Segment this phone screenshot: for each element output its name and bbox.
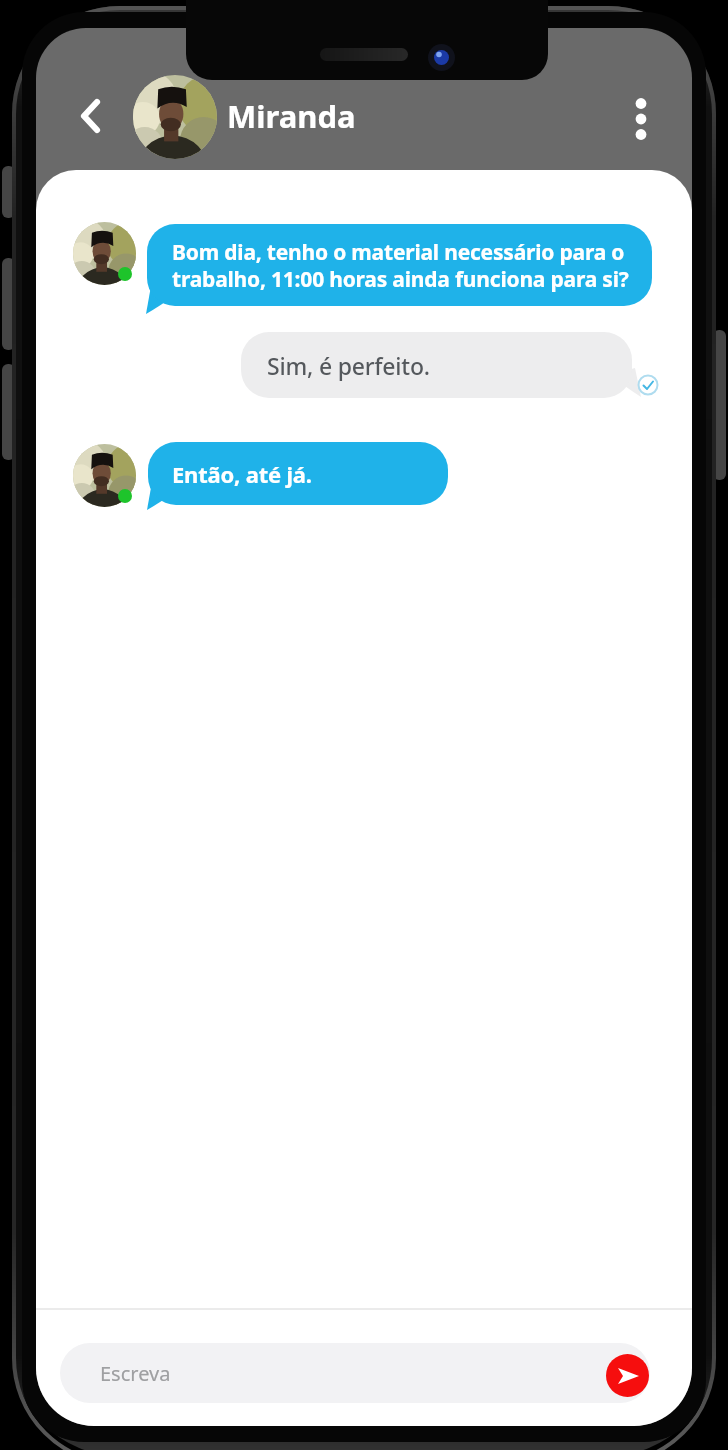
staticText: Escreva xyxy=(100,1360,171,1387)
button[interactable]: Então, até já. xyxy=(148,442,448,505)
button[interactable]: Sim, é perfeito. xyxy=(241,332,632,398)
button[interactable] xyxy=(620,90,662,148)
button[interactable]: Bom dia, tenho o material necessário par… xyxy=(147,224,652,306)
staticText: Sim, é perfeito. xyxy=(267,350,430,381)
button[interactable] xyxy=(68,88,112,144)
button[interactable] xyxy=(606,1354,649,1397)
staticText: Bom dia, tenho o material necessário par… xyxy=(172,238,629,293)
staticText: Miranda xyxy=(227,95,356,137)
staticText: Então, até já. xyxy=(172,459,312,489)
button[interactable]: Escreva xyxy=(60,1343,650,1403)
